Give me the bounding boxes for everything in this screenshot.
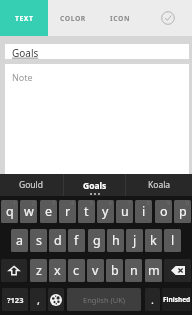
button[interactable]: a [11,229,28,252]
button[interactable]: g [88,229,105,252]
button[interactable]: n [125,259,142,282]
staticText: Gould [19,179,44,191]
staticText: m [148,262,160,279]
button[interactable]: h [107,229,124,252]
staticText: Note [12,71,33,83]
staticText: t [84,203,89,220]
button[interactable]: j [126,229,143,252]
button[interactable]: Space [67,288,141,311]
staticText: 2 [32,200,35,207]
button[interactable]: Goals [5,44,189,59]
staticText: i [142,203,146,220]
button[interactable]: TEXT [0,0,48,36]
staticText: Koala [148,179,171,191]
button[interactable]: l [164,229,181,252]
button[interactable]: t [78,200,95,223]
button[interactable]: z [30,259,47,282]
button[interactable]: q [1,200,18,223]
staticText: 7 [128,200,131,207]
button[interactable]: Change keyboard language [48,288,64,311]
button[interactable]: c [68,259,85,282]
button[interactable]: v [87,259,104,282]
staticText: 5 [90,200,93,207]
button[interactable]: ICON [96,0,143,36]
button[interactable]: COLOR [49,0,96,36]
button[interactable]: o [155,200,172,223]
staticText: l [171,232,175,249]
staticText: f [74,232,79,249]
staticText: p [179,203,187,220]
staticText: o [160,203,168,220]
button[interactable]: Gould [0,174,63,196]
staticText: 3 [52,200,55,207]
button[interactable]: Shift [1,259,27,282]
staticText: 9 [167,200,170,207]
button[interactable]: u [116,200,133,223]
staticText: q [6,203,14,220]
staticText: c [73,262,80,279]
button[interactable]: p [174,200,191,223]
staticText: 4 [71,200,74,207]
staticText: ?123 [7,295,24,305]
staticText: x [54,262,61,279]
button[interactable]: Backspace [164,259,191,282]
staticText: COLOR [60,14,86,23]
staticText: Finished [163,295,191,304]
button[interactable]: k [145,229,162,252]
staticText: 8 [147,200,150,207]
staticText: v [92,262,99,279]
staticText: English (UK) [83,295,126,305]
button[interactable]: ?123 [2,288,28,311]
staticText: a [16,232,24,249]
button[interactable]: w [20,200,37,223]
staticText: r [65,203,71,220]
staticText: b [111,262,119,279]
button[interactable]: Finished [162,288,191,311]
staticText: Goals [12,46,39,60]
button[interactable]: Koala [127,174,192,196]
button[interactable]: Note [5,64,189,174]
staticText: Goals [83,180,107,192]
staticText: , [37,292,40,307]
staticText: 6 [109,200,112,207]
button[interactable]: f [68,229,85,252]
staticText: u [121,203,129,220]
staticText: 1 [13,200,16,207]
button[interactable]: y [97,200,114,223]
staticText: z [36,262,42,279]
staticText: n [130,262,138,279]
staticText: TEXT [15,14,34,23]
button[interactable]: b [106,259,123,282]
staticText: y [102,203,109,220]
button[interactable]: Goals [64,174,126,196]
staticText: k [150,232,157,249]
button[interactable]: e [40,200,57,223]
button[interactable]: x [49,259,66,282]
staticText: w [24,203,34,220]
button[interactable]: m [145,259,162,282]
button[interactable]: s [30,229,47,252]
button[interactable]: Save note [154,4,182,32]
staticText: g [93,232,101,249]
staticText: 0 [186,200,189,207]
staticText: j [133,232,137,249]
staticText: h [112,232,120,249]
button[interactable]: i [135,200,152,223]
button[interactable]: , [30,288,46,311]
button[interactable]: . [145,288,160,311]
staticText: . [151,292,154,307]
staticText: ICON [110,14,130,23]
staticText: e [45,203,53,220]
staticText: s [36,232,42,249]
button[interactable]: d [49,229,66,252]
staticText: d [54,232,62,249]
button[interactable]: r [59,200,76,223]
